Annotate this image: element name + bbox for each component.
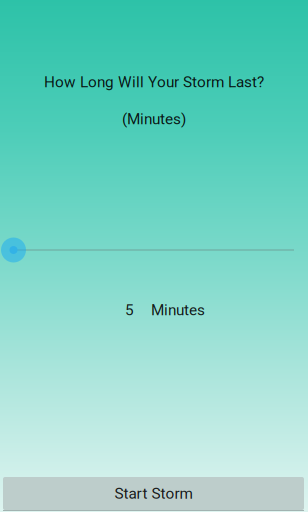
button[interactable]: Start Storm	[3, 477, 304, 511]
staticText: Start Storm	[114, 484, 192, 502]
staticText: How Long Will Your Storm Last?	[44, 73, 264, 91]
staticText: (Minutes)	[122, 110, 186, 128]
button[interactable]: Storm duration slider, 5 minutes	[0, 234, 308, 266]
staticText: 5	[125, 301, 134, 319]
staticText: Minutes	[151, 301, 205, 319]
